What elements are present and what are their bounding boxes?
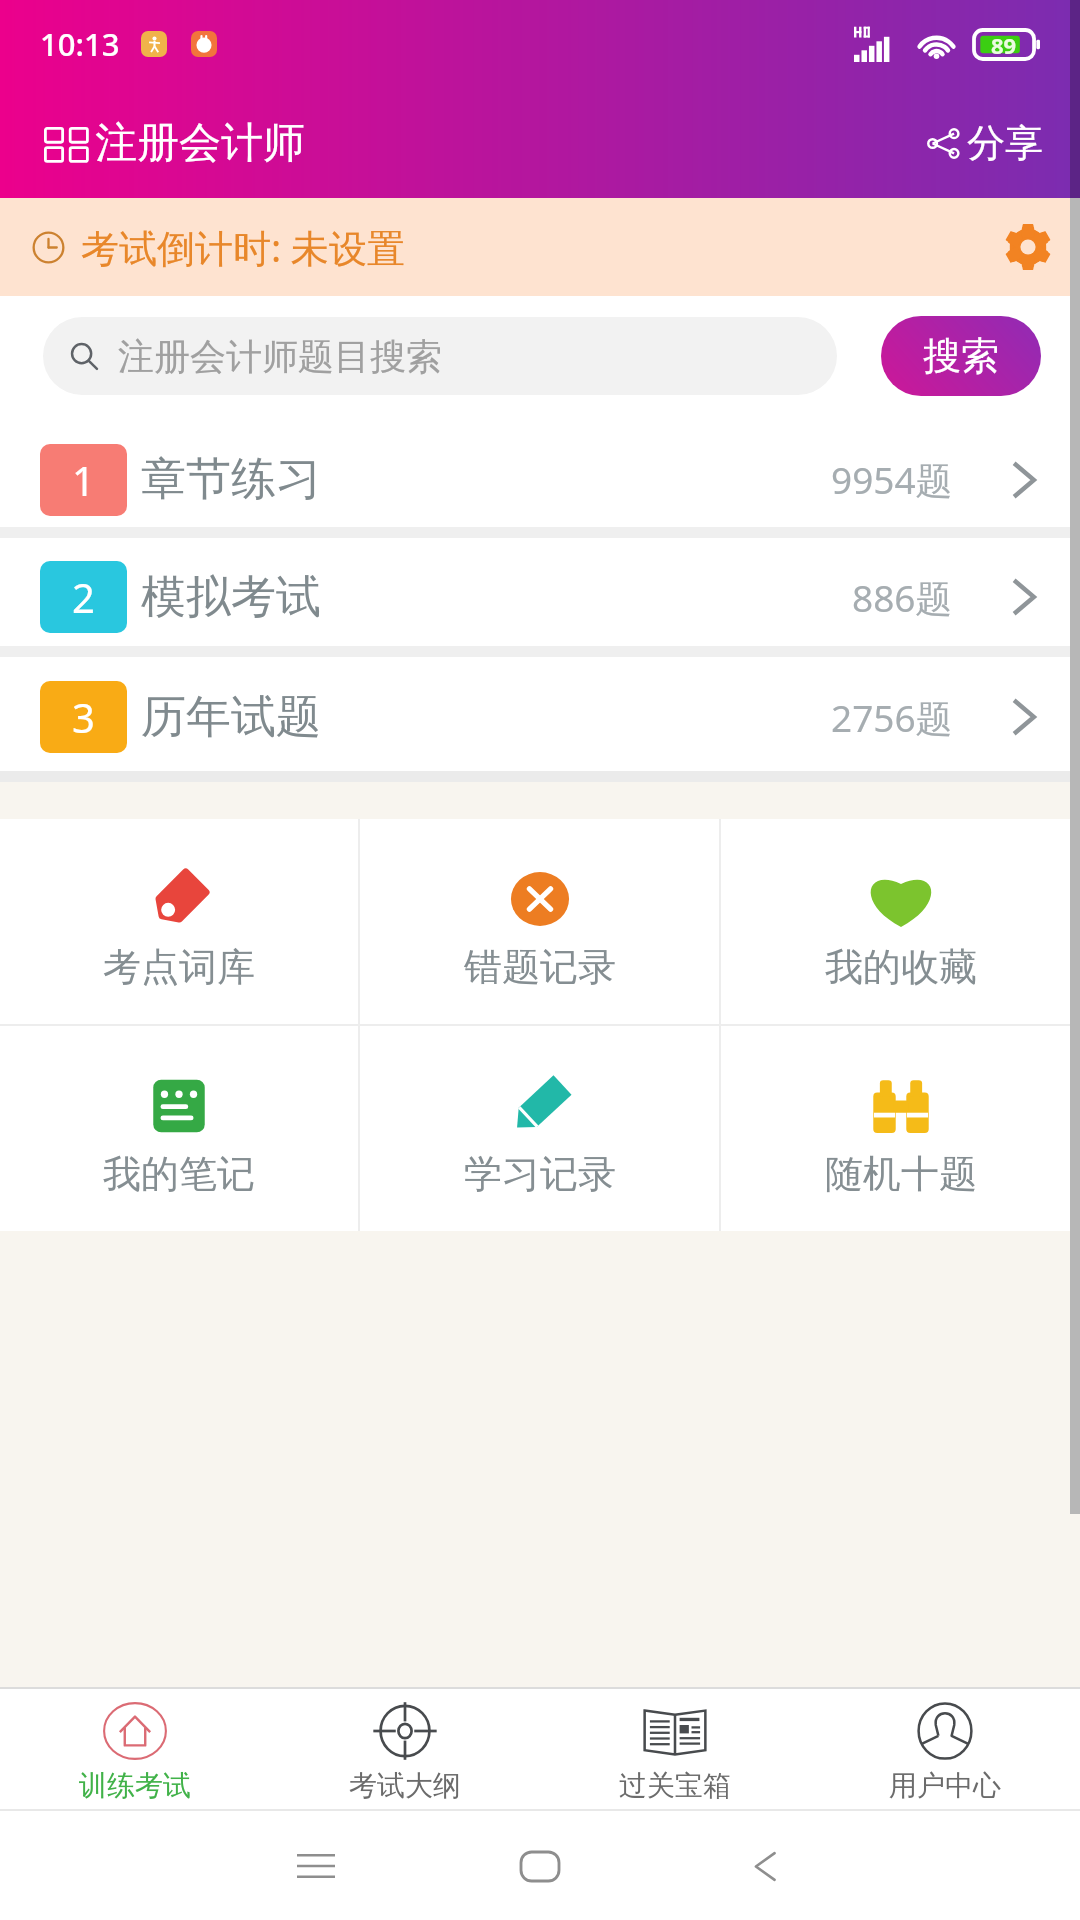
button[interactable]: 错题记录 <box>360 819 719 1024</box>
button[interactable]: 考试大纲 <box>270 1689 540 1809</box>
staticText: 分享 <box>967 119 1043 167</box>
staticText: 1 <box>72 453 95 507</box>
staticText: 考试大纲 <box>349 1768 461 1803</box>
staticText: 2756题 <box>831 692 953 743</box>
button[interactable]: Recents <box>281 1831 351 1901</box>
staticText: 注册会计师题目搜索 <box>118 334 442 379</box>
button[interactable]: 用户中心 <box>810 1689 1080 1809</box>
button[interactable]: Home <box>505 1831 575 1901</box>
button[interactable]: Back <box>730 1831 800 1901</box>
staticText: 学习记录 <box>464 1150 616 1198</box>
staticText: 错题记录 <box>464 943 616 991</box>
button[interactable]: 注册会计师题目搜索 <box>43 317 837 395</box>
button[interactable]: 过关宝箱 <box>540 1689 810 1809</box>
staticText: 随机十题 <box>825 1150 977 1198</box>
staticText: 训练考试 <box>79 1768 191 1803</box>
staticText: 历年试题 <box>141 689 321 746</box>
staticText: 10:13 <box>40 23 120 65</box>
staticText: 模拟考试 <box>141 569 321 626</box>
button[interactable]: 考点词库 <box>0 819 358 1024</box>
staticText: 搜索 <box>923 332 999 380</box>
staticText: 章节练习 <box>141 451 321 508</box>
button[interactable]: 3 <box>0 657 1080 771</box>
button[interactable]: 搜索 <box>881 316 1041 396</box>
button[interactable]: 学习记录 <box>360 1026 719 1231</box>
staticText: 注册会计师 <box>95 117 305 170</box>
staticText: 2 <box>72 570 95 624</box>
staticText: 9954题 <box>831 454 953 505</box>
staticText: 3 <box>72 690 95 744</box>
button[interactable]: 随机十题 <box>721 1026 1080 1231</box>
staticText: 用户中心 <box>889 1768 1001 1803</box>
staticText: 我的收藏 <box>825 943 977 991</box>
staticText: 考试倒计时: 未设置 <box>81 221 406 273</box>
staticText: 886题 <box>852 572 953 623</box>
button[interactable]: 1 <box>0 397 1080 527</box>
button[interactable]: 分享 <box>919 107 1051 179</box>
button[interactable]: 2 <box>0 538 1080 646</box>
staticText: 考点词库 <box>103 943 255 991</box>
other: 设置 <box>1005 224 1051 270</box>
staticText: 过关宝箱 <box>619 1768 731 1803</box>
staticText: 我的笔记 <box>103 1150 255 1198</box>
button[interactable]: 训练考试 <box>0 1689 270 1809</box>
button[interactable]: 我的笔记 <box>0 1026 358 1231</box>
button[interactable]: 考试倒计时: 未设置 <box>0 198 1080 296</box>
staticText: 89 <box>991 30 1017 59</box>
button[interactable]: 我的收藏 <box>721 819 1080 1024</box>
